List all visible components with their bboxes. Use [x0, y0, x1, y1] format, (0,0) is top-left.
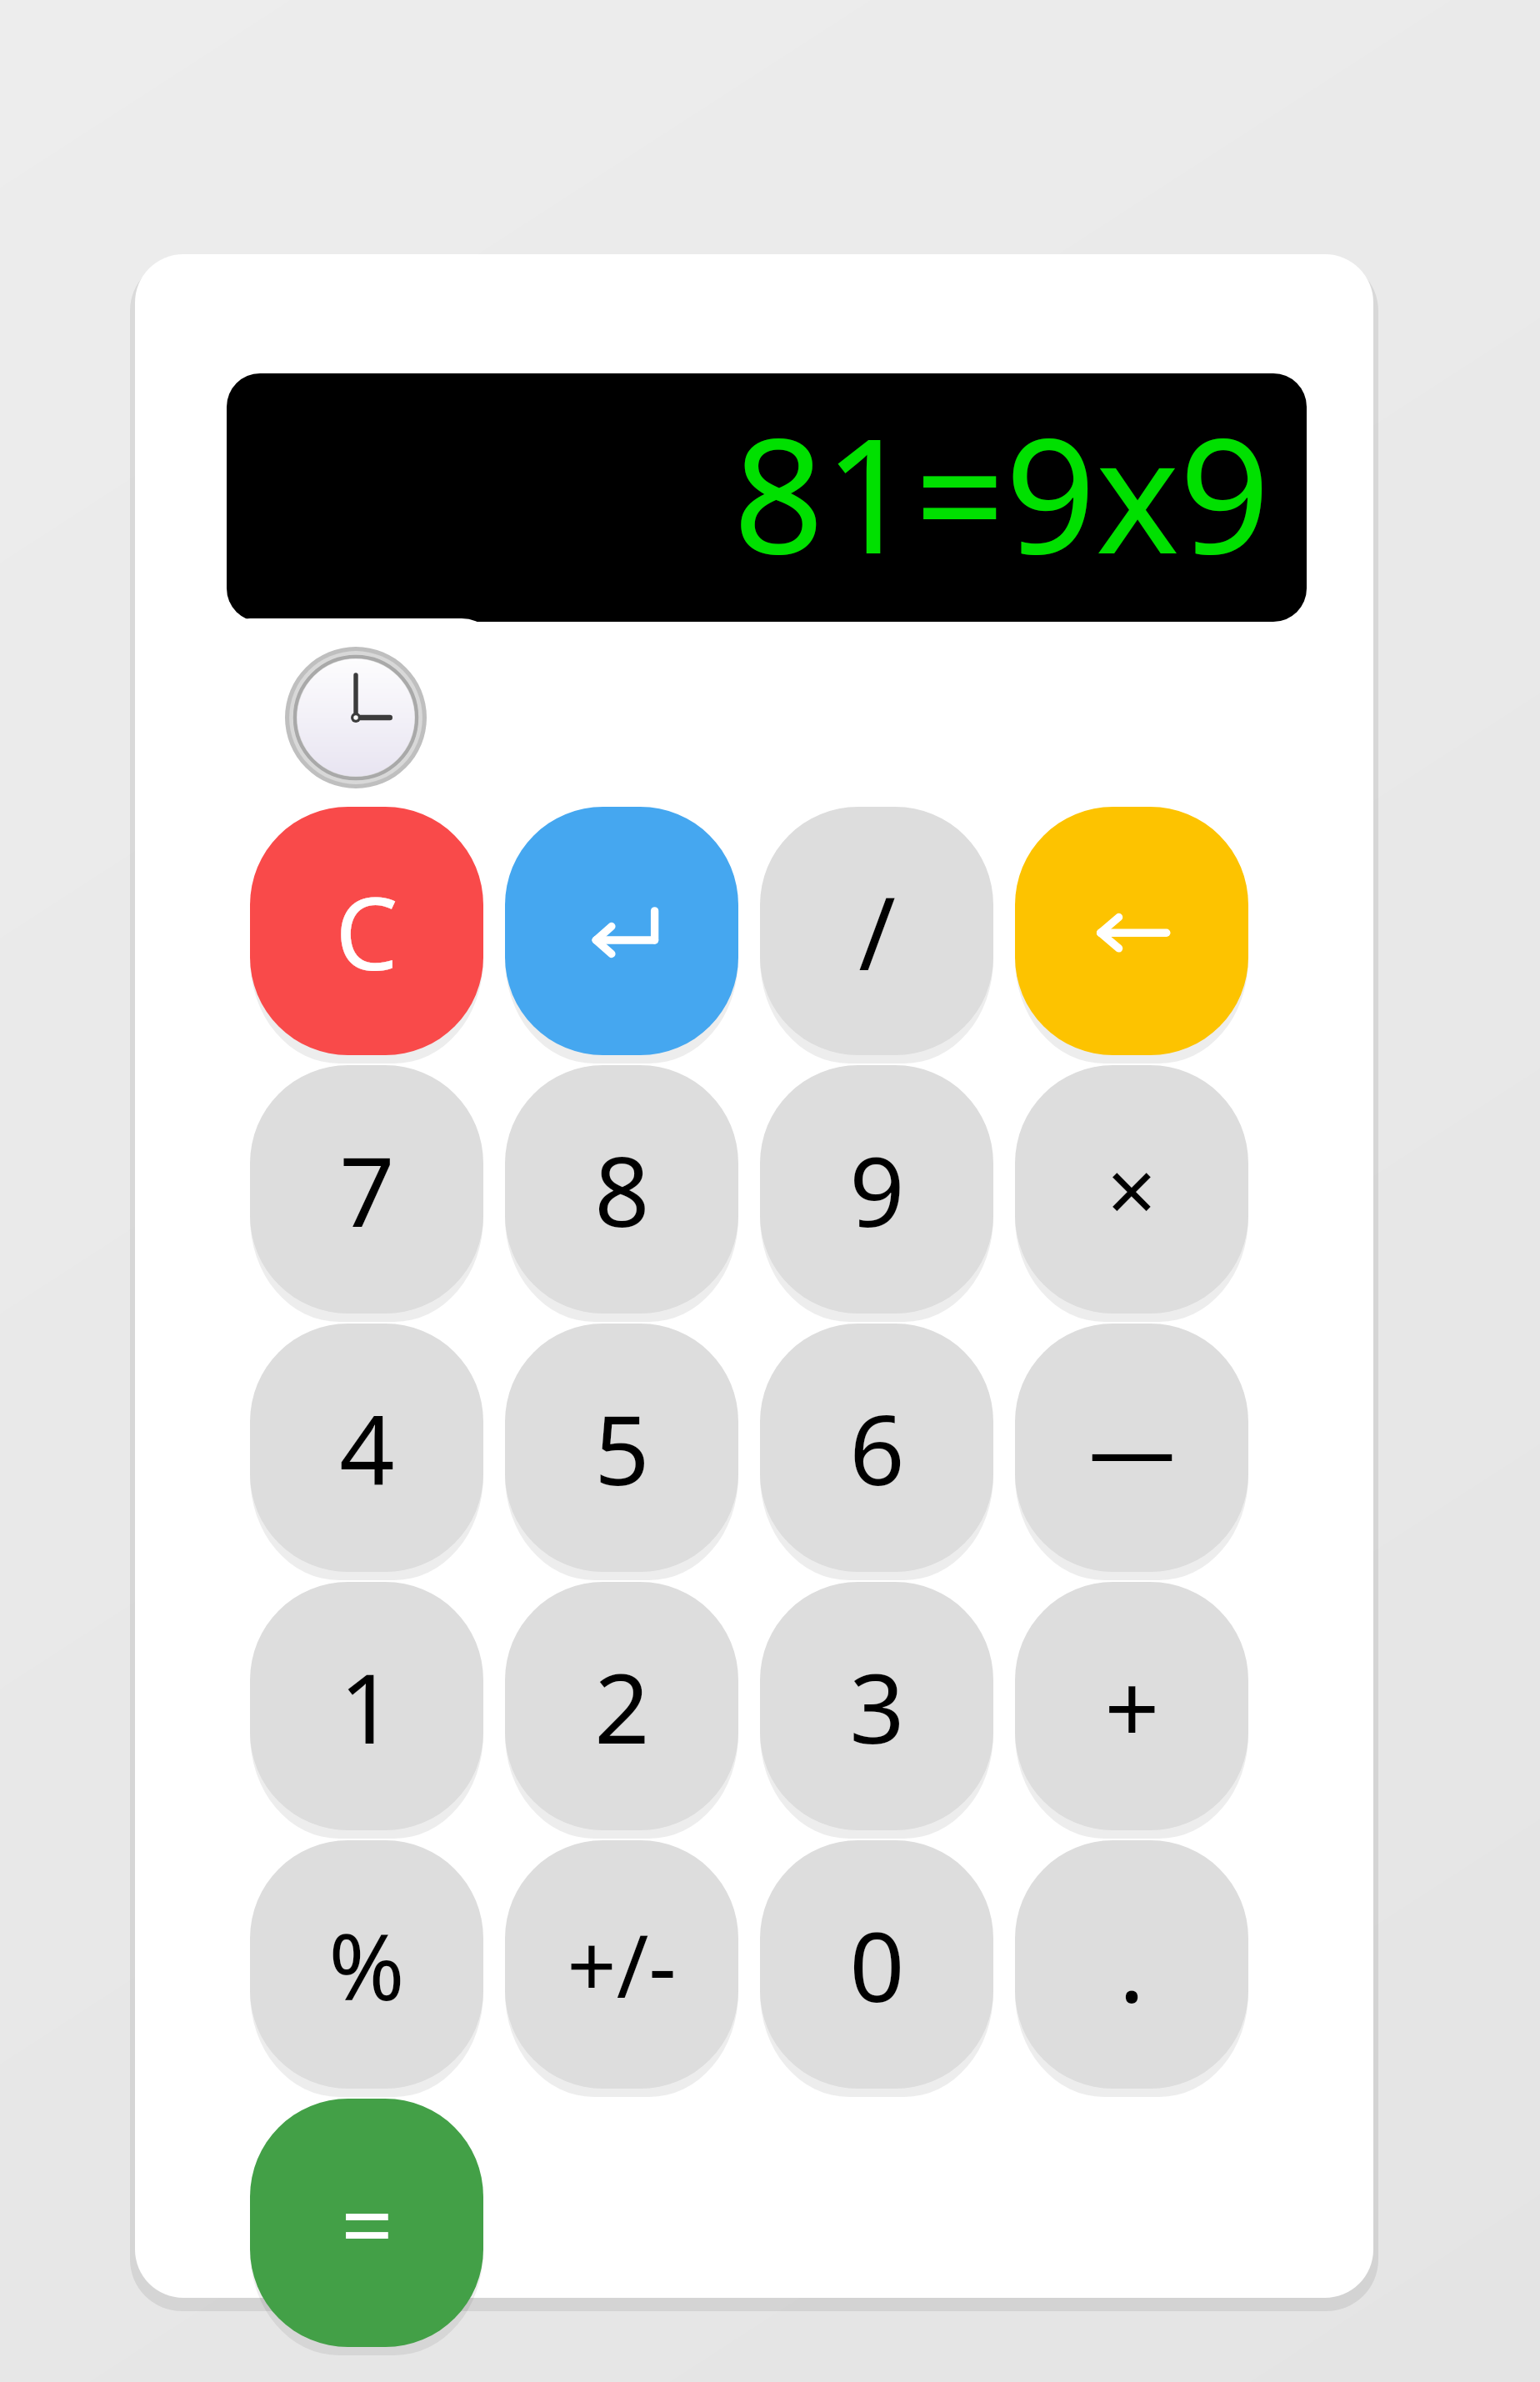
button[interactable]: / [760, 807, 993, 1055]
button[interactable]: 9 [760, 1065, 993, 1314]
button[interactable]: 4 [250, 1324, 483, 1572]
button[interactable]: 2 [505, 1582, 738, 1830]
button[interactable]: . [1015, 1840, 1248, 2089]
button[interactable]: 6 [760, 1324, 993, 1572]
staticText: 7 [339, 1123, 395, 1255]
button[interactable]: — [1015, 1324, 1248, 1572]
staticText: 3 [849, 1640, 905, 1772]
button[interactable]: History [213, 618, 498, 833]
staticText: C [335, 863, 398, 999]
staticText: % [328, 1902, 405, 2027]
staticText: 5 [594, 1382, 650, 1514]
staticText: 9 [849, 1123, 905, 1255]
button[interactable]: + [1015, 1582, 1248, 1830]
button[interactable]: 7 [250, 1065, 483, 1314]
button[interactable]: 3 [760, 1582, 993, 1830]
staticText: — [1088, 1389, 1176, 1507]
staticText: 0 [849, 1899, 905, 2030]
staticText: . [1118, 1899, 1145, 2030]
staticText: 1 [339, 1640, 395, 1772]
staticText: 8 [594, 1123, 650, 1255]
staticText: / [858, 863, 896, 999]
button[interactable]: = [250, 2099, 483, 2347]
button[interactable]: +/- [505, 1840, 738, 2089]
button[interactable]: 1 [250, 1582, 483, 1830]
button[interactable]: 8 [505, 1065, 738, 1314]
staticText: 81=9x9 [733, 384, 1270, 600]
button[interactable]: 5 [505, 1324, 738, 1572]
button[interactable]: C [250, 807, 483, 1055]
button[interactable]: 0 [760, 1840, 993, 2089]
staticText: 4 [339, 1382, 395, 1514]
staticText: + [1104, 1640, 1160, 1772]
staticText: = [341, 2160, 393, 2285]
staticText: +/- [567, 1905, 677, 2024]
staticText: × [1107, 1130, 1157, 1249]
staticText: 6 [849, 1382, 905, 1514]
button[interactable]: Backspace [1015, 807, 1248, 1055]
button[interactable]: Evaluate [505, 807, 738, 1055]
button[interactable]: % [250, 1840, 483, 2089]
staticText: 2 [594, 1640, 650, 1772]
button[interactable]: × [1015, 1065, 1248, 1314]
